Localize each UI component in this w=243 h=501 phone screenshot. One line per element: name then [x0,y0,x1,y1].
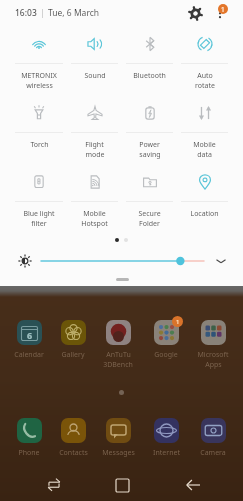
staticText: Blue light [23,209,55,219]
staticText: Phone [18,448,40,458]
button[interactable]: Torch [11,94,67,163]
button[interactable]: Secure [122,163,177,232]
button[interactable]: Power [122,94,177,163]
staticText: 1 [176,318,180,326]
staticText: filter [31,219,47,229]
staticText: 6 [27,329,33,341]
button[interactable]: Expand [213,253,229,269]
button[interactable]: Microsoft [191,320,235,370]
staticText: Messages [102,448,135,458]
button[interactable]: Flight [67,94,122,163]
staticText: Google [154,350,178,360]
staticText: 1 [221,5,225,14]
staticText: Internet [153,448,180,458]
staticText: METRONIX [21,71,57,81]
staticText: Secure [138,209,161,219]
staticText: Sound [84,71,106,81]
staticText: Contacts [59,448,88,458]
button[interactable]: Mobile [177,94,232,163]
button[interactable]: Camera [191,418,235,458]
staticText: 16:03 [15,7,37,19]
button[interactable]: AnTuTu [96,320,140,370]
staticText: mode [85,150,105,160]
staticText: Microsoft [197,350,229,360]
button[interactable]: Mobile [67,163,122,232]
button[interactable]: Sound [67,25,122,94]
staticText: Mobile [193,140,216,150]
button[interactable]: Bluetooth [122,25,177,94]
staticText: Mobile [83,209,106,219]
staticText: 3DBench [103,360,133,370]
staticText: saving [139,150,161,160]
staticText: Calendar [14,350,44,360]
staticText: Gallery [61,350,85,360]
button[interactable]: Internet [144,418,188,458]
staticText: AnTuTu [106,350,131,360]
staticText: Power [139,140,160,150]
staticText: Flight [85,140,104,150]
button[interactable]: More options [210,3,230,23]
staticText: Bluetooth [133,71,166,81]
staticText: Hotspot [81,219,108,229]
button[interactable]: Settings [185,3,205,23]
staticText: Torch [30,140,49,150]
button[interactable]: Brightness [41,253,204,269]
staticText: Camera [200,448,226,458]
button[interactable]: 6 [7,320,51,360]
button[interactable]: Back [172,469,214,501]
button[interactable]: 1 [144,320,188,360]
button[interactable]: Home [101,469,143,501]
button[interactable]: Location [177,163,232,232]
staticText: Tue, 6 March [48,7,100,19]
staticText: rotate [195,81,215,91]
staticText: Apps [205,360,222,370]
button[interactable]: Recents [33,469,75,501]
button[interactable]: Contacts [51,418,95,458]
staticText: Folder [139,219,160,229]
button[interactable]: METRONIX [11,25,67,94]
button[interactable]: Messages [96,418,140,458]
button[interactable]: Gallery [51,320,95,360]
button[interactable]: Blue light [11,163,67,232]
staticText: Location [190,209,219,219]
button[interactable]: Phone [7,418,51,458]
staticText: Auto [197,71,213,81]
button[interactable]: Auto [177,25,232,94]
staticText: wireless [26,81,53,91]
staticText: data [197,150,212,160]
